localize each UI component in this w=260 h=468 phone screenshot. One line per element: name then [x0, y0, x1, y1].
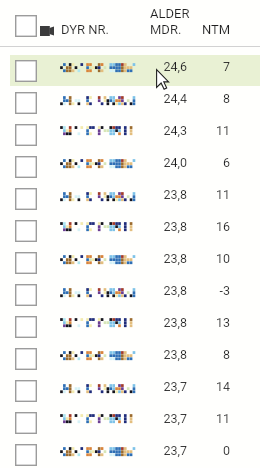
button[interactable]: Select: [15, 60, 37, 82]
staticText: -3: [200, 283, 230, 298]
button[interactable]: Select: [15, 124, 37, 146]
staticText: ALDER MDR.: [150, 6, 190, 37]
button[interactable]: [0, 183, 260, 215]
button[interactable]: [0, 407, 260, 439]
staticText: 24,6: [145, 59, 187, 74]
button[interactable]: Select: [15, 156, 37, 178]
staticText: 8: [200, 91, 230, 106]
staticText: 24,4: [145, 91, 187, 106]
button[interactable]: Select: [15, 316, 37, 338]
staticText: 23,7: [145, 443, 187, 458]
staticText: 10: [200, 251, 230, 266]
button[interactable]: Select: [15, 412, 37, 434]
staticText: NTM: [202, 22, 231, 37]
button[interactable]: [0, 119, 260, 151]
staticText: 23,8: [145, 187, 187, 202]
button[interactable]: Select: [15, 220, 37, 242]
button[interactable]: Select: [15, 444, 37, 466]
button[interactable]: Select: [15, 252, 37, 274]
button[interactable]: [0, 87, 260, 119]
staticText: 24,0: [145, 155, 187, 170]
button[interactable]: Select: [15, 284, 37, 306]
staticText: 23,8: [145, 251, 187, 266]
staticText: 14: [200, 379, 230, 394]
button[interactable]: Video recording: [40, 26, 54, 36]
staticText: 7: [200, 59, 230, 74]
staticText: 23,8: [145, 219, 187, 234]
staticText: 6: [200, 155, 230, 170]
staticText: 13: [200, 315, 230, 330]
staticText: 23,8: [145, 283, 187, 298]
button[interactable]: [0, 215, 260, 247]
button[interactable]: Select: [15, 188, 37, 210]
button[interactable]: [0, 375, 260, 407]
staticText: 23,8: [145, 315, 187, 330]
button[interactable]: [0, 311, 260, 343]
button[interactable]: Select: [15, 380, 37, 402]
button[interactable]: Select: [15, 15, 37, 37]
staticText: 16: [200, 219, 230, 234]
staticText: 11: [200, 411, 230, 426]
staticText: 23,7: [145, 411, 187, 426]
button[interactable]: [0, 247, 260, 279]
button[interactable]: [0, 343, 260, 375]
button[interactable]: [0, 151, 260, 183]
staticText: 11: [200, 123, 230, 138]
button[interactable]: [0, 439, 260, 468]
staticText: 11: [200, 187, 230, 202]
button[interactable]: [0, 55, 260, 87]
button[interactable]: [0, 279, 260, 311]
staticText: 23,7: [145, 379, 187, 394]
staticText: 24,3: [145, 123, 187, 138]
staticText: DYR NR.: [61, 22, 110, 37]
staticText: 23,8: [145, 347, 187, 362]
staticText: 8: [200, 347, 230, 362]
button[interactable]: Select: [15, 348, 37, 370]
staticText: 0: [200, 443, 230, 458]
button[interactable]: Select: [15, 92, 37, 114]
